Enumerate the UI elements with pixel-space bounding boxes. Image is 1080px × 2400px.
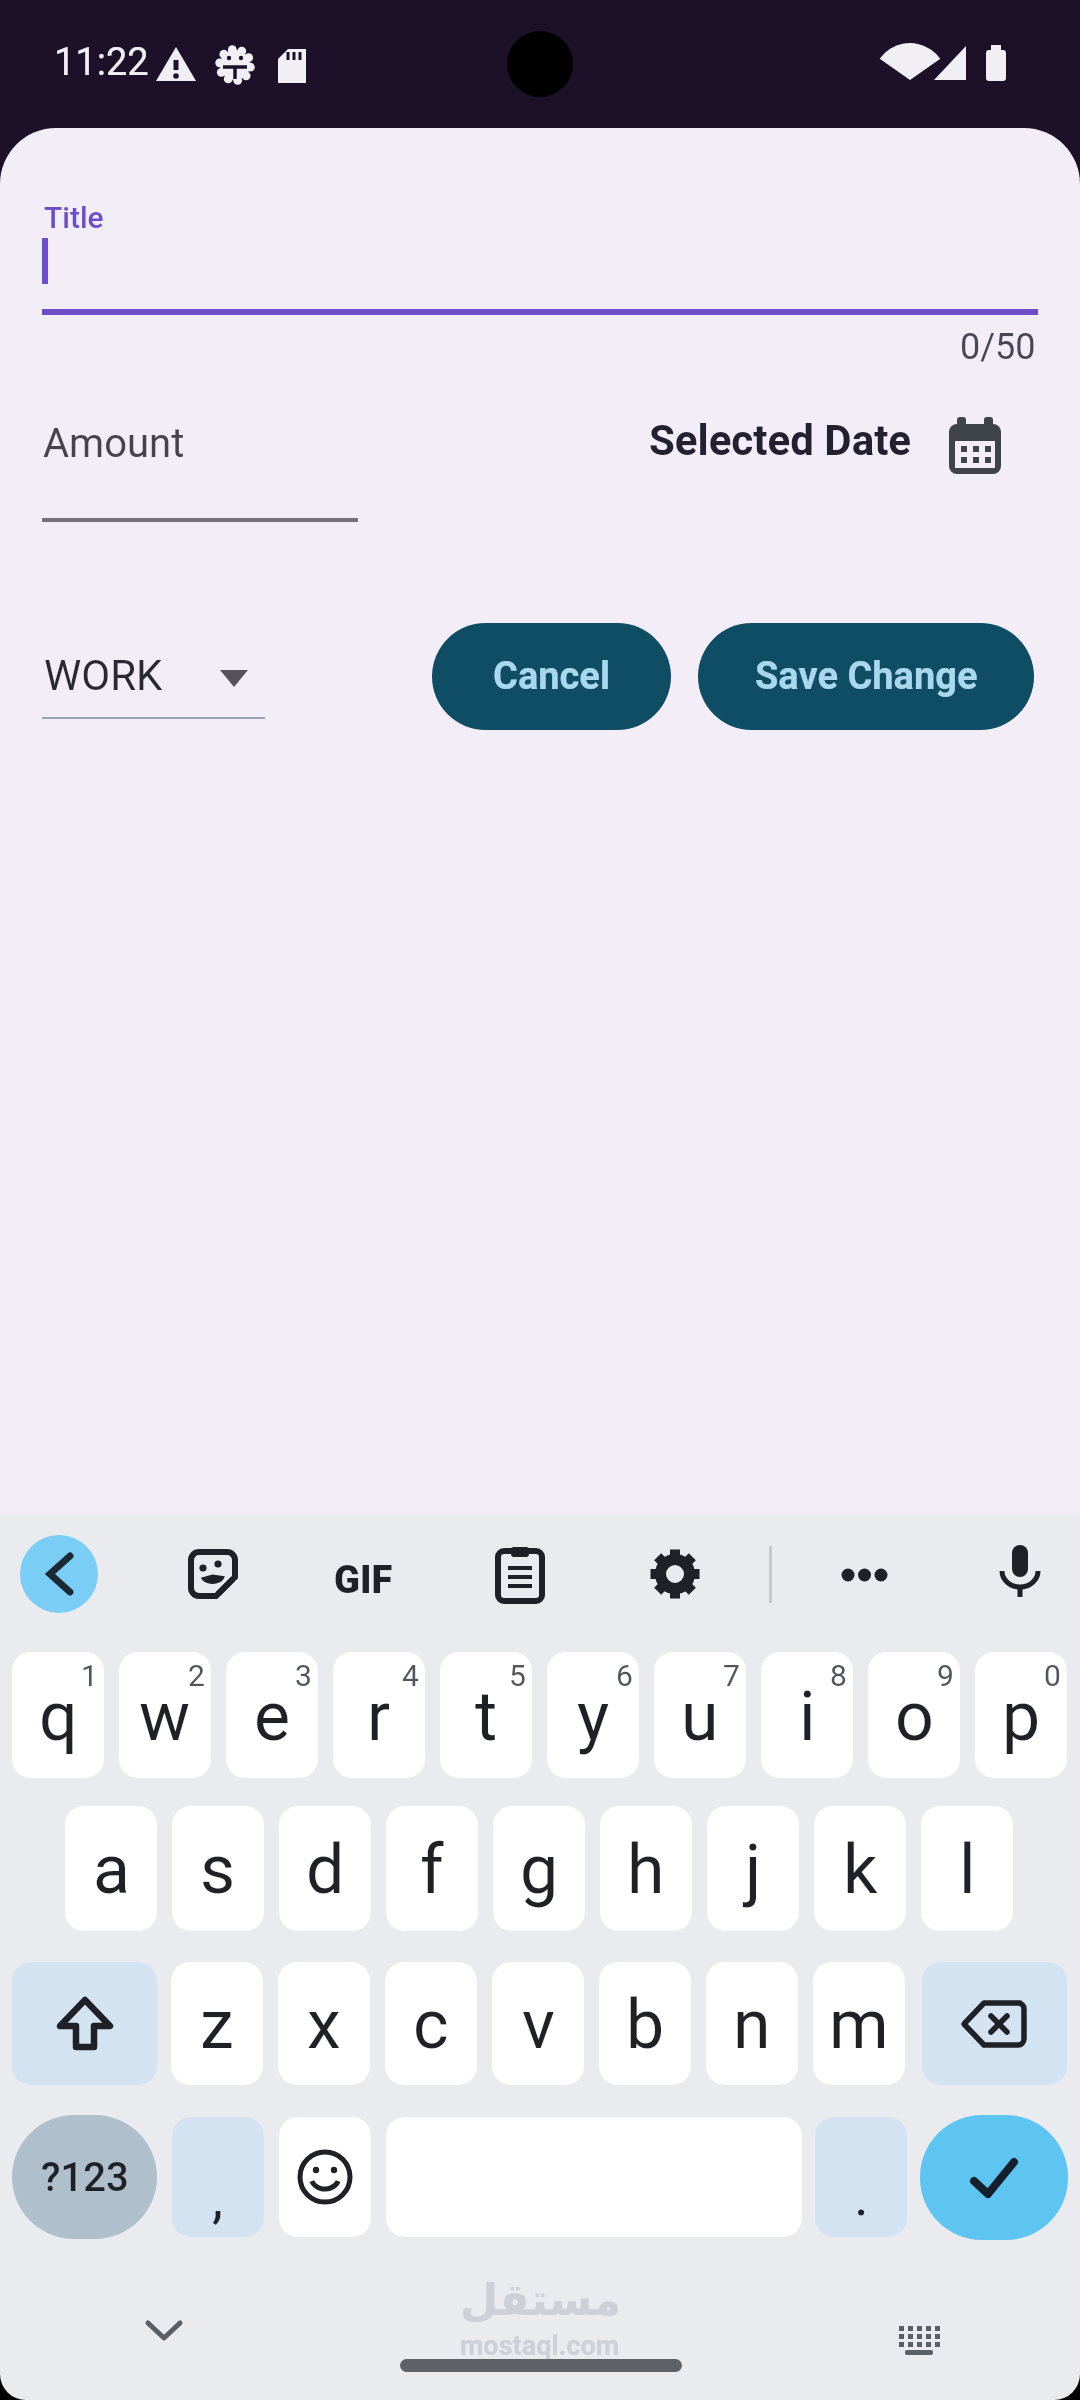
button[interactable] [897,2324,941,2360]
staticText: 4 [402,1658,419,1693]
button[interactable]: Cancel [432,623,671,730]
staticText: f [420,1830,444,1910]
staticText: مستقل [460,2274,621,2325]
staticText: h [627,1830,665,1910]
staticText: x [307,1985,341,2065]
staticText: n [733,1985,771,2065]
button[interactable] [145,2319,183,2343]
staticText: t [475,1677,498,1757]
button[interactable]: a [65,1806,157,1931]
button[interactable]: k [814,1806,906,1931]
staticText: l [959,1830,976,1910]
staticText: 3 [295,1658,312,1693]
button[interactable] [841,1564,888,1586]
staticText: k [843,1830,878,1910]
staticText: . [854,2163,869,2229]
staticText: Title [44,200,104,235]
staticText: 2 [188,1658,205,1693]
button[interactable]: , [172,2117,264,2237]
button[interactable]: e [226,1652,318,1778]
staticText: y [577,1677,610,1757]
button[interactable] [920,2115,1068,2240]
staticText: 0 [1044,1658,1061,1693]
button[interactable] [1000,1545,1040,1605]
staticText: c [413,1985,449,2065]
staticText: ?123 [41,2154,129,2201]
button[interactable]: s [172,1806,264,1931]
staticText: 0/50 [960,326,1036,368]
staticText: Save Change [755,654,978,699]
button[interactable]: n [706,1962,798,2085]
staticText: , [212,2165,224,2231]
button[interactable] [922,1962,1067,2085]
staticText: j [745,1830,762,1910]
button[interactable] [648,1547,702,1601]
button[interactable] [279,2117,371,2237]
button[interactable]: h [600,1806,692,1931]
staticText: e [254,1677,291,1757]
staticText: 6 [616,1658,633,1693]
staticText: m [829,1985,889,2065]
staticText: 1 [81,1658,98,1693]
button[interactable]: WORK [42,628,265,720]
button[interactable]: o [868,1652,960,1778]
button[interactable]: b [599,1962,691,2085]
staticText: r [367,1677,391,1757]
button[interactable]: z [171,1962,263,2085]
staticText: g [520,1830,559,1910]
staticText: 5 [509,1658,526,1693]
button[interactable]: d [279,1806,371,1931]
staticText: 8 [830,1658,847,1693]
staticText: 11:22 [54,40,149,85]
staticText: i [799,1677,816,1757]
button[interactable]: y [547,1652,639,1778]
staticText: v [522,1985,555,2065]
staticText: Cancel [493,654,610,699]
button[interactable] [498,1547,542,1601]
staticText: u [681,1677,719,1757]
button[interactable]: q [12,1652,104,1778]
button[interactable]: i [761,1652,853,1778]
button[interactable]: Save Change [698,623,1034,730]
button[interactable] [20,1535,98,1613]
staticText: a [93,1830,130,1910]
staticText: 9 [937,1658,954,1693]
staticText: 7 [723,1658,740,1693]
staticText: o [895,1677,934,1757]
staticText: b [626,1985,665,2065]
button[interactable]: . [815,2117,907,2237]
staticText: p [1002,1677,1041,1757]
button[interactable] [12,1962,157,2085]
staticText: q [39,1677,78,1757]
staticText: Selected Date [649,416,912,465]
button[interactable] [949,417,1001,475]
button[interactable]: c [385,1962,477,2085]
staticText: d [306,1830,345,1910]
staticText: z [200,1985,234,2065]
staticText: s [200,1830,236,1910]
button[interactable]: r [333,1652,425,1778]
button[interactable]: GIF [334,1558,393,1603]
button[interactable]: j [707,1806,799,1931]
button[interactable]: t [440,1652,532,1778]
staticText: Amount [43,420,185,467]
button[interactable]: x [278,1962,370,2085]
button[interactable]: p [975,1652,1067,1778]
button[interactable]: g [493,1806,585,1931]
button[interactable]: u [654,1652,746,1778]
button[interactable]: m [813,1962,905,2085]
button[interactable]: w [119,1652,211,1778]
button[interactable] [188,1549,238,1599]
button[interactable]: l [921,1806,1013,1931]
staticText: w [139,1677,191,1757]
staticText: mostaql.com [460,2330,620,2362]
button[interactable]: ?123 [12,2115,157,2239]
button[interactable]: f [386,1806,478,1931]
button[interactable]: v [492,1962,584,2085]
staticText: WORK [44,651,163,700]
